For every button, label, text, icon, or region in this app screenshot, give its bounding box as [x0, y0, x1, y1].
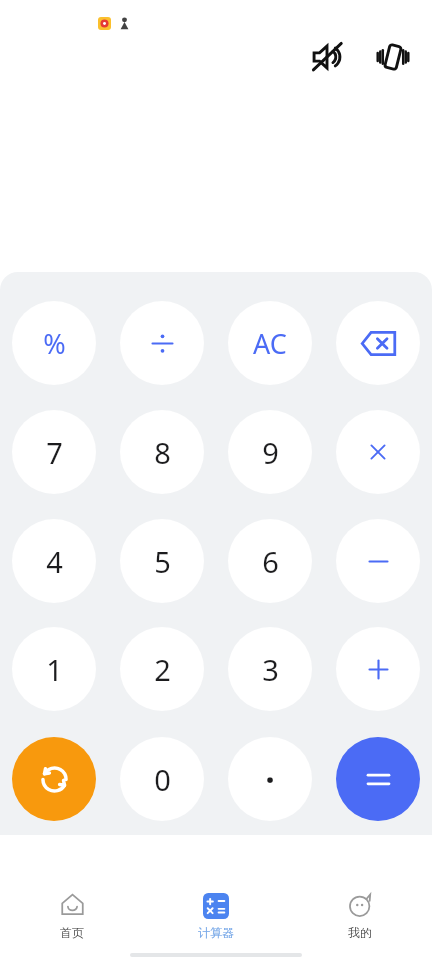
- staticText: 0: [154, 760, 171, 799]
- staticText: 9: [262, 433, 279, 472]
- button[interactable]: 7: [12, 410, 96, 494]
- staticText: %: [43, 325, 66, 362]
- button[interactable]: Vibrate: [372, 36, 414, 78]
- button[interactable]: 6: [228, 519, 312, 603]
- button[interactable]: %: [12, 301, 96, 385]
- button[interactable]: Multiply: [336, 410, 420, 494]
- staticText: 1: [46, 650, 63, 689]
- staticText: 7: [46, 433, 63, 472]
- staticText: 计算器: [198, 925, 234, 940]
- button[interactable]: AC: [228, 301, 312, 385]
- button[interactable]: 0: [120, 737, 204, 821]
- button[interactable]: 2: [120, 627, 204, 711]
- button[interactable]: Equals: [336, 737, 420, 821]
- staticText: 8: [154, 433, 171, 472]
- button[interactable]: ·: [228, 737, 312, 821]
- button[interactable]: 计算器: [144, 893, 288, 940]
- button[interactable]: Divide: [120, 301, 204, 385]
- button[interactable]: Convert: [12, 737, 96, 821]
- button[interactable]: 首页: [0, 892, 144, 940]
- staticText: 2: [154, 650, 171, 689]
- button[interactable]: 1: [12, 627, 96, 711]
- button[interactable]: 4: [12, 519, 96, 603]
- button[interactable]: Plus: [336, 627, 420, 711]
- button[interactable]: 5: [120, 519, 204, 603]
- button[interactable]: 3: [228, 627, 312, 711]
- button[interactable]: Mute: [306, 36, 348, 78]
- button[interactable]: 9: [228, 410, 312, 494]
- staticText: 4: [46, 542, 63, 581]
- staticText: 3: [262, 650, 279, 689]
- button[interactable]: Backspace: [336, 301, 420, 385]
- staticText: AC: [253, 325, 287, 362]
- staticText: 首页: [60, 925, 84, 940]
- button[interactable]: 我的: [288, 892, 432, 940]
- staticText: 我的: [348, 925, 372, 940]
- staticText: ·: [265, 756, 275, 802]
- button[interactable]: 8: [120, 410, 204, 494]
- button[interactable]: Minus: [336, 519, 420, 603]
- staticText: 5: [154, 542, 171, 581]
- staticText: 6: [262, 542, 279, 581]
